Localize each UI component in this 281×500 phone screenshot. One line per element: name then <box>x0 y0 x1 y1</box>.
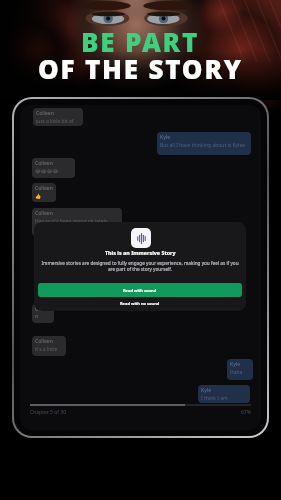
staticText: 👍 <box>35 193 42 199</box>
staticText: Colleen <box>35 338 53 345</box>
staticText: Colleen <box>35 185 53 192</box>
staticText: Read with no sound <box>120 301 160 306</box>
staticText: Chapter 5 of 30 <box>30 409 67 416</box>
button[interactable]: Colleen <box>32 158 75 178</box>
button[interactable]: Kyle <box>227 359 253 380</box>
button[interactable]: Read with sound <box>38 283 242 297</box>
staticText: Kyle <box>230 361 241 368</box>
staticText: Haha <box>230 369 243 376</box>
button[interactable]: Colleen <box>33 108 83 126</box>
staticText: it's a little bit <box>35 346 63 354</box>
staticText: I think I am actually <box>201 395 247 401</box>
staticText: Read with sound <box>123 288 157 293</box>
staticText: Immersive stories are designed to fully … <box>38 260 242 272</box>
staticText: OF THE STORY <box>38 51 243 86</box>
staticText: Colleen <box>35 306 51 320</box>
staticText: 😂😂😂😂 <box>35 168 59 174</box>
button[interactable]: Kyle <box>198 385 250 403</box>
staticText: BE PART <box>81 24 200 59</box>
staticText: just a little bit of fun <box>36 118 80 124</box>
staticText: Kyle <box>201 387 212 394</box>
staticText: Colleen <box>35 160 53 167</box>
staticText: But all I have thinking about is Kylee <box>160 142 246 149</box>
button[interactable]: Colleen <box>32 336 66 356</box>
button[interactable]: Colleen <box>32 183 56 202</box>
staticText: Colleen <box>36 110 54 117</box>
button[interactable]: Colleen <box>32 208 122 236</box>
staticText: Kyle <box>160 134 171 141</box>
staticText: Colleen <box>35 210 53 217</box>
staticText: Hey so it's been going ok lately <box>35 218 108 225</box>
staticText: This is an Immersive Story <box>105 249 176 256</box>
button[interactable]: Kyle <box>157 132 251 155</box>
button[interactable]: Read with no sound <box>38 297 242 310</box>
staticText: 67% <box>241 409 251 416</box>
other: Immersive audio <box>131 228 151 248</box>
button[interactable]: Colleen <box>32 304 54 323</box>
